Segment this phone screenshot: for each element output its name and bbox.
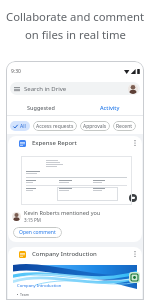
button[interactable]: Recent [113, 121, 136, 131]
button[interactable]: Suggested [6, 100, 75, 116]
staticText: 3:15 PM [24, 217, 41, 223]
button[interactable]: More options [130, 138, 140, 148]
staticText: Vision [20, 298, 30, 300]
staticText: All [20, 123, 26, 130]
staticText: Team [20, 292, 29, 297]
staticText: Approvals [83, 123, 107, 130]
staticText: Recent [116, 123, 133, 130]
button[interactable]: Open comment [13, 227, 62, 238]
staticText: Kevin Roberts mentioned you [24, 209, 101, 216]
staticText: 9:30 [11, 68, 21, 75]
staticText: Activity [100, 104, 120, 111]
staticText: Collaborate and comment [6, 9, 145, 24]
button[interactable]: All [10, 121, 30, 131]
staticText: Search in Drive [24, 85, 67, 93]
staticText: Access requests [36, 123, 74, 130]
staticText: on files in real time [25, 27, 126, 42]
staticText: Company Introduction [32, 250, 97, 258]
button[interactable]: More options [130, 249, 140, 259]
button[interactable]: Company Introduction [8, 247, 142, 300]
button[interactable]: Expense Report [8, 136, 142, 242]
staticText: Suggested [27, 104, 55, 111]
staticText: Expense Report [32, 139, 77, 147]
button[interactable]: Access requests [33, 121, 77, 131]
button[interactable]: Approvals [80, 121, 110, 131]
button[interactable]: Search in Drive [10, 82, 140, 95]
button[interactable]: Activity [75, 100, 144, 116]
staticText: Open comment [19, 229, 56, 236]
staticText: Company Introduction [17, 283, 62, 289]
